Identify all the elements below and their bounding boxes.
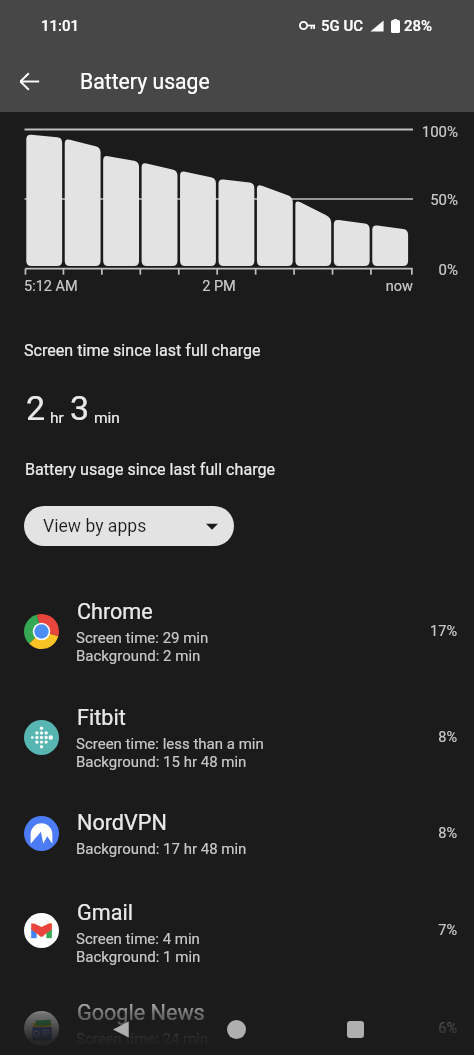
staticText: Battery usage	[80, 69, 210, 94]
staticText: Google News	[77, 1000, 205, 1025]
button[interactable]: Back	[97, 1005, 145, 1053]
staticText: Chrome	[77, 599, 153, 624]
staticText: Fitbit	[77, 705, 126, 730]
staticText: 6%	[396, 1020, 457, 1037]
staticText: Gmail	[77, 900, 133, 925]
staticText: 28%	[404, 17, 433, 35]
button[interactable]: Gmail	[0, 884, 474, 970]
staticText: 8%	[396, 729, 457, 746]
staticText: min	[94, 409, 120, 427]
staticText: 5G UC	[321, 17, 364, 35]
staticText: 17%	[396, 623, 457, 640]
staticText: 3	[70, 388, 90, 428]
staticText: NordVPN	[77, 810, 167, 835]
button[interactable]: Recent apps	[331, 1005, 379, 1053]
staticText: Battery usage since last full charge	[25, 460, 276, 479]
button[interactable]: Home	[212, 1005, 260, 1053]
button[interactable]: Fitbit	[0, 689, 474, 775]
staticText: 2	[26, 388, 46, 428]
staticText: 2 PM	[179, 278, 259, 295]
staticText: Background: 15 hr 48 min	[76, 753, 247, 771]
staticText: Background: 1 min	[76, 948, 201, 966]
staticText: 11:01	[41, 17, 80, 35]
staticText: Screen time: 29 min	[76, 629, 209, 647]
button[interactable]: Back	[8, 60, 51, 103]
staticText: Screen time: 24 min	[76, 1030, 209, 1048]
staticText: now	[342, 278, 413, 295]
staticText: Background: 17 hr 48 min	[76, 840, 247, 858]
staticText: 100%	[397, 123, 458, 141]
staticText: View by apps	[43, 516, 147, 537]
button[interactable]: Chrome	[0, 583, 474, 669]
staticText: Background: 2 min	[76, 647, 201, 665]
staticText: Screen time: 4 min	[76, 930, 200, 948]
button[interactable]: Google News	[0, 984, 474, 1055]
staticText: 0%	[397, 261, 458, 279]
staticText: 8%	[396, 825, 457, 842]
staticText: Screen time since last full charge	[24, 341, 261, 360]
staticText: hr	[50, 409, 64, 427]
button[interactable]: NordVPN	[0, 794, 474, 868]
staticText: 7%	[396, 922, 457, 939]
staticText: Screen time: less than a min	[76, 735, 264, 753]
staticText: 5:12 AM	[24, 278, 78, 295]
staticText: 50%	[397, 191, 458, 209]
button[interactable]: View by apps	[24, 506, 234, 546]
